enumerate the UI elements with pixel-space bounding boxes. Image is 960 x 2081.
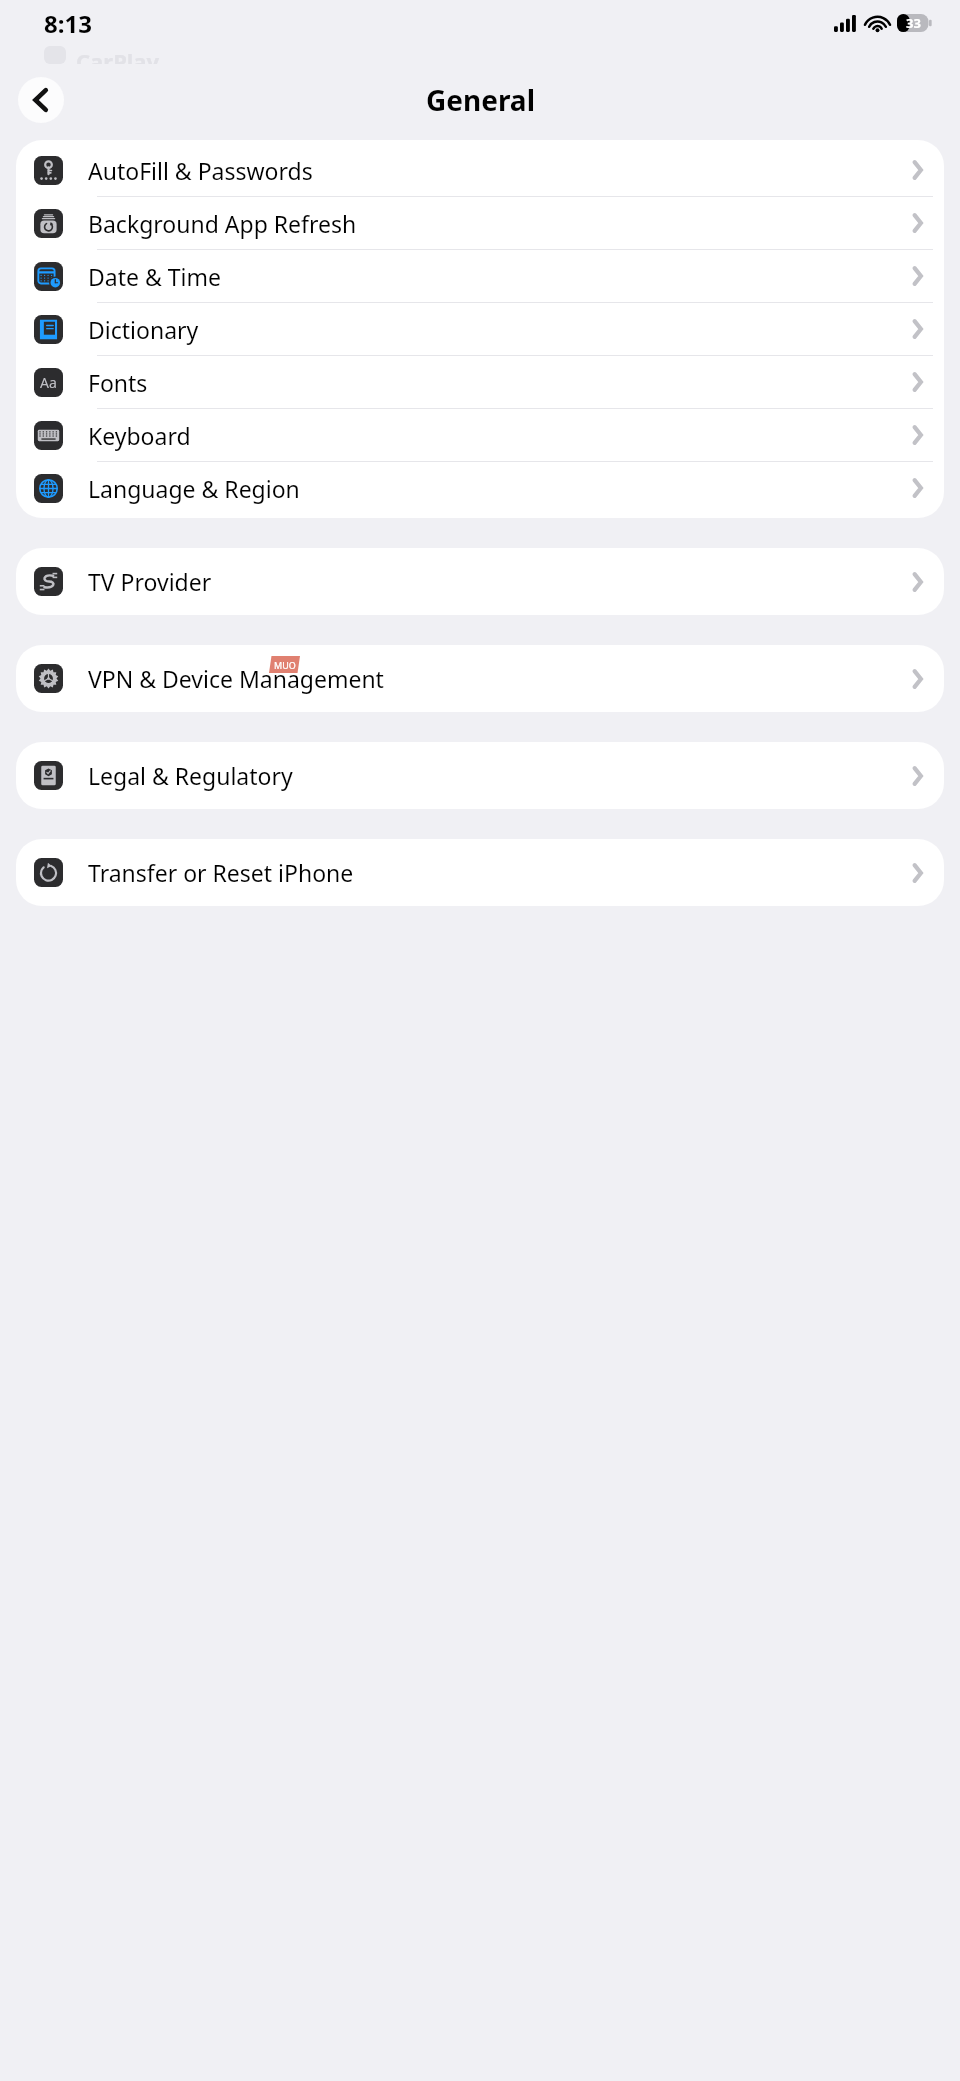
staticText: MUO (274, 659, 296, 671)
staticText: Aa (40, 373, 57, 392)
staticText: Keyboard (88, 420, 191, 451)
button[interactable]: Legal & Regulatory (16, 742, 944, 809)
button[interactable]: TV Provider (16, 548, 944, 615)
staticText: VPN & Device Management (88, 663, 384, 694)
button[interactable]: Dictionary (16, 303, 944, 355)
staticText: Transfer or Reset iPhone (88, 857, 354, 888)
staticText: Legal & Regulatory (88, 760, 293, 791)
button[interactable]: Date & Time (16, 250, 944, 302)
button[interactable]: Language & Region (16, 462, 944, 514)
button[interactable]: Background App Refresh (16, 197, 944, 249)
staticText: Background App Refresh (88, 208, 357, 239)
button[interactable]: AutoFill & Passwords (16, 144, 944, 196)
staticText: Dictionary (88, 314, 199, 345)
button[interactable]: Transfer or Reset iPhone (16, 839, 944, 906)
button[interactable]: Back (18, 77, 64, 123)
button[interactable]: Aa (16, 356, 944, 408)
staticText: TV Provider (88, 566, 212, 597)
staticText: AutoFill & Passwords (88, 155, 313, 186)
button[interactable]: Keyboard (16, 409, 944, 461)
staticText: Language & Region (88, 473, 300, 504)
staticText: General (426, 81, 535, 119)
staticText: 33 (906, 14, 921, 32)
button[interactable]: VPN & Device Management (16, 645, 944, 712)
staticText: CarPlay (76, 46, 160, 64)
staticText: Fonts (88, 367, 148, 398)
staticText: Date & Time (88, 261, 221, 292)
staticText: 8:13 (44, 7, 92, 40)
